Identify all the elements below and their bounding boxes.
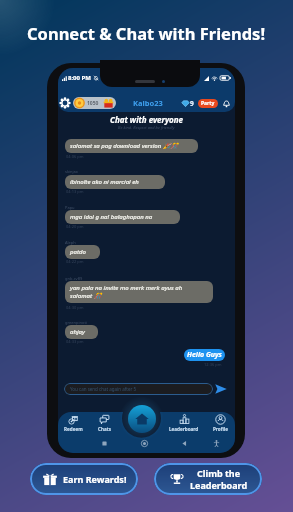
staticText: patdo xyxy=(70,248,86,256)
staticText: Kalbo23 xyxy=(133,98,163,108)
staticText: mga idol g na! balaghapan na xyxy=(70,213,153,221)
staticText: You can send chat again after 5 xyxy=(70,386,137,392)
staticText: Papu xyxy=(65,205,75,210)
staticText: yan pala na invite mo merk merk ayus ah … xyxy=(70,284,183,300)
button[interactable]: Send xyxy=(215,383,227,395)
button[interactable]: Climb the xyxy=(154,463,262,495)
staticText: 1050 xyxy=(87,100,99,107)
staticText: 04:13 pm xyxy=(66,189,84,194)
staticText: 04:30 pm xyxy=(66,305,84,310)
staticText: 04:20 pm xyxy=(66,224,84,229)
staticText: 04:33 pm xyxy=(66,339,84,344)
button[interactable]: Leaderboard xyxy=(168,414,200,436)
button[interactable]: You can send chat again after 5 xyxy=(64,383,213,395)
staticText: ibinolte ako ni marcial eh xyxy=(70,178,139,186)
staticText: gnb-cv89 xyxy=(65,276,83,281)
button[interactable]: 1050 xyxy=(73,97,116,109)
staticText: Redeem xyxy=(64,426,83,432)
button[interactable]: Party xyxy=(198,99,218,108)
staticText: 12:36 pm xyxy=(204,362,222,367)
staticText: Party xyxy=(201,100,215,107)
staticText: ahjay xyxy=(70,328,85,336)
staticText: 8:00 PM xyxy=(68,74,91,82)
staticText: Earn Rewards! xyxy=(63,473,127,485)
button[interactable]: Notifications xyxy=(222,99,231,108)
button[interactable]: Settings xyxy=(59,97,71,109)
staticText: greenpinoti xyxy=(65,320,87,325)
staticText: Hello Guys xyxy=(187,350,222,360)
staticText: skinjax xyxy=(65,169,78,174)
button[interactable]: Chats xyxy=(88,414,120,436)
staticText: Climb the xyxy=(197,467,241,479)
button[interactable]: Home xyxy=(128,405,156,433)
staticText: Chats xyxy=(98,426,111,432)
button[interactable]: Redeem xyxy=(58,414,89,436)
staticText: Connect & Chat with Friends! xyxy=(27,22,266,44)
staticText: 04:22 pm xyxy=(66,259,84,264)
staticText: Leaderboard xyxy=(190,479,248,491)
button[interactable]: Profile xyxy=(204,414,235,436)
staticText: 9 xyxy=(190,99,194,108)
staticText: Be kind. Respect and be friendly xyxy=(118,125,175,130)
staticText: 04:06 pm xyxy=(66,154,84,159)
staticText: Profile xyxy=(213,426,228,432)
staticText: salamat sa pag download version 🎉🎊 xyxy=(70,142,178,150)
staticText: Chat with everyone xyxy=(110,114,184,125)
staticText: Aleph xyxy=(65,240,76,245)
button[interactable]: Earn Rewards! xyxy=(30,463,138,495)
staticText: Leaderboard xyxy=(169,426,199,432)
